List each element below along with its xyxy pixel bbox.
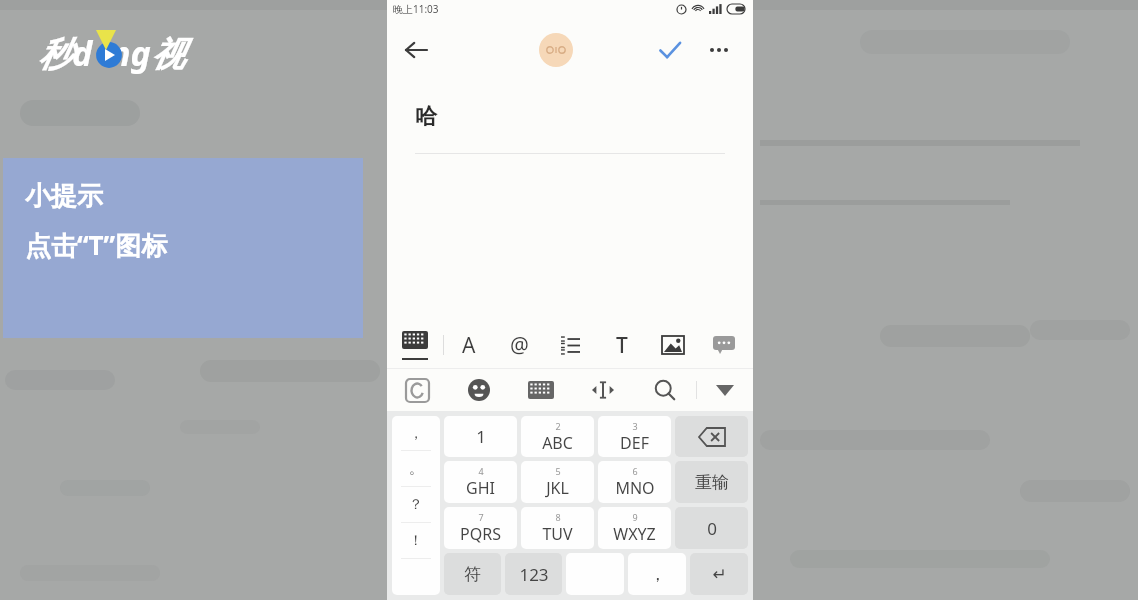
button[interactable]: chat [698, 321, 749, 369]
button[interactable]: Keyboard [387, 321, 443, 369]
staticText: TUV [542, 523, 573, 545]
button[interactable]: ↵ [690, 553, 748, 595]
button[interactable]: MNO [598, 461, 671, 503]
staticText: ！ [409, 532, 423, 550]
staticText: 小提示 [25, 180, 103, 213]
button[interactable]: Avatar [539, 33, 573, 67]
staticText: DEF [620, 432, 649, 454]
staticText: 。 [409, 460, 423, 478]
button[interactable]: list [545, 321, 596, 369]
button[interactable]: 。 [392, 451, 440, 487]
staticText: 2 [555, 420, 561, 432]
staticText: 4 [478, 465, 484, 477]
staticText: 点击“T”图标 [25, 227, 168, 263]
button[interactable]: 符 [444, 553, 501, 595]
staticText: ， [409, 425, 423, 443]
button[interactable]: 重输 [675, 461, 748, 503]
button[interactable]: 123 [505, 553, 562, 595]
staticText: ， [649, 564, 666, 585]
button[interactable]: Back [395, 29, 437, 71]
staticText: 重输 [695, 472, 729, 493]
staticText: 123 [519, 563, 549, 586]
button[interactable]: Hide keyboard [697, 369, 753, 411]
staticText: 8 [555, 511, 561, 523]
staticText: A [462, 331, 476, 360]
staticText: 9 [632, 511, 638, 523]
button[interactable]: More options [699, 30, 739, 70]
staticText: 1 [476, 425, 486, 448]
staticText: 5 [555, 465, 561, 477]
staticText: 晚上11:03 [393, 2, 439, 16]
button[interactable]: WXYZ [598, 507, 671, 549]
button[interactable]: 小提示 [3, 158, 363, 338]
staticText: GHI [466, 477, 495, 499]
button[interactable]: ， [392, 416, 440, 451]
button[interactable]: DEF [598, 416, 671, 457]
staticText: ？ [409, 496, 423, 514]
button[interactable]: JKL [521, 461, 594, 503]
button[interactable]: Sogou [387, 369, 448, 411]
button[interactable]: Search [634, 369, 696, 411]
button[interactable]: ABC [521, 416, 594, 457]
button[interactable]: T [596, 321, 647, 369]
staticText: WXYZ [613, 523, 656, 545]
staticText: 6 [632, 465, 638, 477]
button[interactable]: Cursor [572, 369, 634, 411]
button[interactable]: Keyboard layout [510, 369, 572, 411]
button[interactable]: ？ [392, 487, 440, 523]
button[interactable]: ， [628, 553, 686, 595]
button[interactable]: Emoji [448, 369, 510, 411]
button[interactable]: 1 [444, 416, 517, 457]
staticText: 3 [632, 420, 638, 432]
button[interactable]: ⌫ [675, 416, 748, 457]
button[interactable]: PQRS [444, 507, 517, 549]
staticText: 0 [707, 517, 717, 540]
staticText: @ [510, 331, 529, 360]
staticText: ↵ [712, 564, 727, 584]
button[interactable]: GHI [444, 461, 517, 503]
staticText: ABC [542, 432, 573, 454]
staticText: 哈 [415, 103, 437, 131]
staticText: 符 [464, 564, 481, 585]
staticText: JKL [546, 477, 569, 499]
button[interactable]: @ [494, 321, 545, 369]
button[interactable]: TUV [521, 507, 594, 549]
button[interactable]: img [647, 321, 698, 369]
staticText: MNO [615, 477, 655, 499]
staticText: 秒d ng视频 [38, 30, 218, 82]
button[interactable]: Confirm [649, 29, 691, 71]
button[interactable]: 0 [675, 507, 748, 549]
staticText: T [616, 331, 628, 360]
button[interactable]: A [444, 321, 494, 369]
staticText: PQRS [460, 523, 501, 545]
staticText: 7 [478, 511, 484, 523]
button[interactable]: ！ [392, 523, 440, 559]
